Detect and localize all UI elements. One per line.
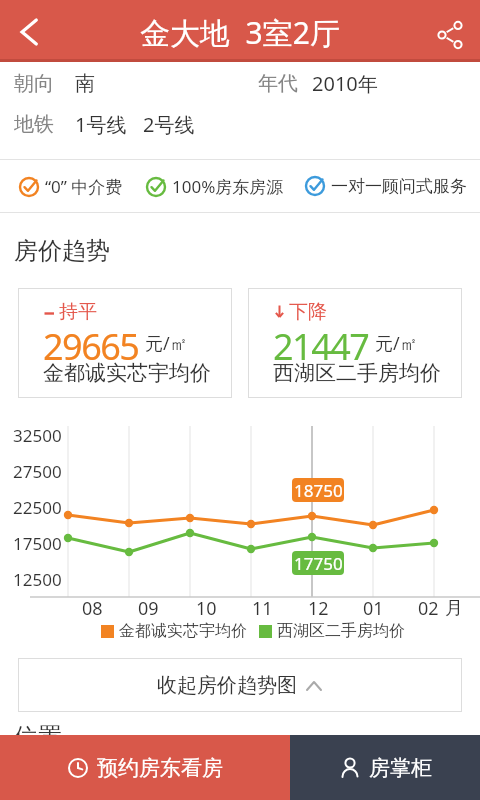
staticText: 32500 bbox=[13, 424, 62, 447]
button[interactable] bbox=[424, 0, 480, 62]
staticText: 12500 bbox=[13, 568, 62, 591]
staticText: 年代 bbox=[258, 71, 298, 96]
staticText: 02 bbox=[418, 596, 439, 620]
staticText: 21447 bbox=[273, 322, 369, 360]
staticText: 收起房价趋势图 bbox=[157, 673, 297, 698]
staticText: 金大地 3室2厅 bbox=[140, 12, 340, 53]
button[interactable]: 下降 bbox=[248, 288, 462, 398]
staticText: 位置 bbox=[14, 722, 62, 752]
staticText: 元/㎡ bbox=[375, 331, 418, 356]
staticText: 08 bbox=[82, 596, 103, 620]
staticText: 金都诚实芯宇均价 bbox=[119, 621, 247, 641]
staticText: 房价趋势 bbox=[14, 236, 110, 266]
staticText: 1号线 bbox=[75, 111, 127, 138]
staticText: 10 bbox=[196, 596, 217, 620]
staticText: 22500 bbox=[13, 496, 62, 519]
staticText: 房掌柜 bbox=[369, 755, 432, 781]
button[interactable] bbox=[0, 2, 56, 61]
staticText: 西湖区二手房均价 bbox=[273, 360, 441, 384]
staticText: 17750 bbox=[294, 552, 343, 575]
staticText: 12 bbox=[308, 596, 329, 620]
button[interactable]: 预约房东看房 bbox=[0, 735, 290, 800]
staticText: 2号线 bbox=[143, 111, 195, 138]
staticText: 09 bbox=[138, 596, 159, 620]
staticText: 11 bbox=[252, 596, 273, 620]
staticText: 100%房东房源 bbox=[172, 175, 284, 198]
staticText: 2010年 bbox=[312, 70, 378, 97]
staticText: “0” 中介费 bbox=[45, 175, 123, 198]
staticText: 一对一顾问式服务 bbox=[331, 176, 467, 197]
button[interactable]: 房掌柜 bbox=[290, 735, 480, 800]
staticText: 月 bbox=[445, 597, 463, 620]
staticText: 持平 bbox=[59, 300, 97, 322]
staticText: 17500 bbox=[13, 532, 62, 555]
staticText: 朝向 bbox=[14, 71, 54, 96]
staticText: 西湖区二手房均价 bbox=[277, 621, 405, 641]
staticText: 29665 bbox=[43, 322, 139, 360]
staticText: 01 bbox=[363, 596, 384, 620]
staticText: 地铁 bbox=[14, 112, 54, 137]
staticText: 预约房东看房 bbox=[97, 755, 223, 781]
staticText: 18750 bbox=[294, 479, 343, 502]
staticText: 元/㎡ bbox=[145, 331, 188, 356]
staticText: 27500 bbox=[13, 460, 62, 483]
button[interactable]: 收起房价趋势图 bbox=[18, 658, 462, 712]
staticText: 金都诚实芯宇均价 bbox=[43, 360, 211, 384]
staticText: 下降 bbox=[289, 300, 327, 322]
staticText: 南 bbox=[75, 71, 95, 96]
button[interactable]: 持平 bbox=[18, 288, 232, 398]
